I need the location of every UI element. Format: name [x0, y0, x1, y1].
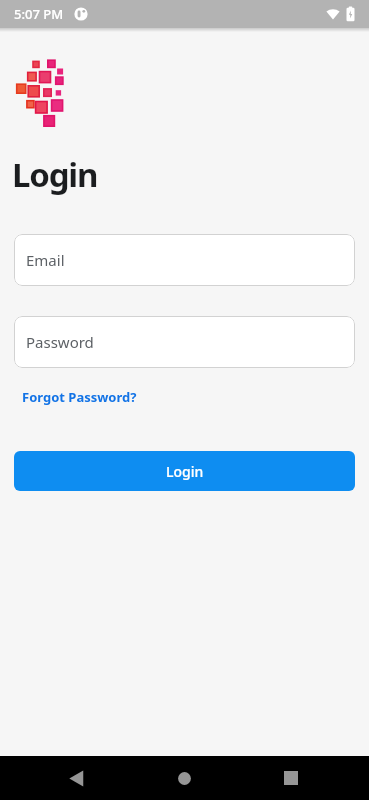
staticText: Email	[26, 250, 65, 270]
staticText: Login	[12, 152, 98, 197]
button[interactable]: Login	[14, 451, 355, 491]
button[interactable]: Password	[14, 316, 355, 368]
button[interactable]	[267, 756, 315, 800]
button[interactable]	[52, 756, 100, 800]
staticText: Login	[166, 462, 204, 481]
staticText: Password	[26, 332, 94, 352]
staticText: 5:07 PM	[14, 5, 64, 23]
button[interactable]	[160, 756, 208, 800]
button[interactable]: Email	[14, 234, 355, 286]
button[interactable]: Forgot Password?	[22, 388, 137, 406]
